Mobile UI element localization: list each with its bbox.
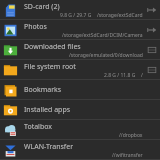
staticText: Bookmarks — [24, 85, 62, 95]
button[interactable]: Photos — [0, 20, 160, 40]
button[interactable]: Open — [146, 4, 158, 16]
button[interactable]: File system root — [0, 60, 160, 80]
staticText: /storage/extSdCard/DCIM/Camera — [62, 32, 143, 39]
staticText: /storage/extSdCard — [97, 12, 143, 19]
button[interactable]: Options — [146, 64, 158, 76]
staticText: SD-card (2) — [24, 2, 60, 12]
button[interactable]: Options — [146, 44, 158, 56]
staticText: /storage/emulated/0/download — [69, 52, 143, 59]
button[interactable]: Open — [146, 24, 158, 36]
staticText: //wifitransfer — [112, 152, 143, 159]
button[interactable]: Totalbox — [0, 120, 160, 140]
staticText: WLAN-Transfer — [24, 142, 74, 152]
staticText: 2.8 G / 11.8 G — [104, 72, 136, 79]
button[interactable]: Downloaded files — [0, 40, 160, 60]
staticText: //dropbox — [119, 132, 143, 139]
button[interactable]: Bookmarks — [0, 80, 160, 100]
staticText: Totalbox — [24, 122, 52, 132]
staticText: Downloaded files — [24, 42, 81, 52]
staticText: / — [141, 72, 143, 79]
button[interactable]: Installed apps — [0, 100, 160, 120]
button[interactable]: SD-card (2) — [0, 0, 160, 20]
staticText: Photos — [24, 22, 47, 32]
staticText: 9.8 G / 29.7 G — [60, 12, 92, 19]
staticText: Installed apps — [24, 105, 71, 115]
staticText: File system root — [24, 62, 76, 72]
button[interactable]: WLAN-Transfer — [0, 140, 160, 160]
